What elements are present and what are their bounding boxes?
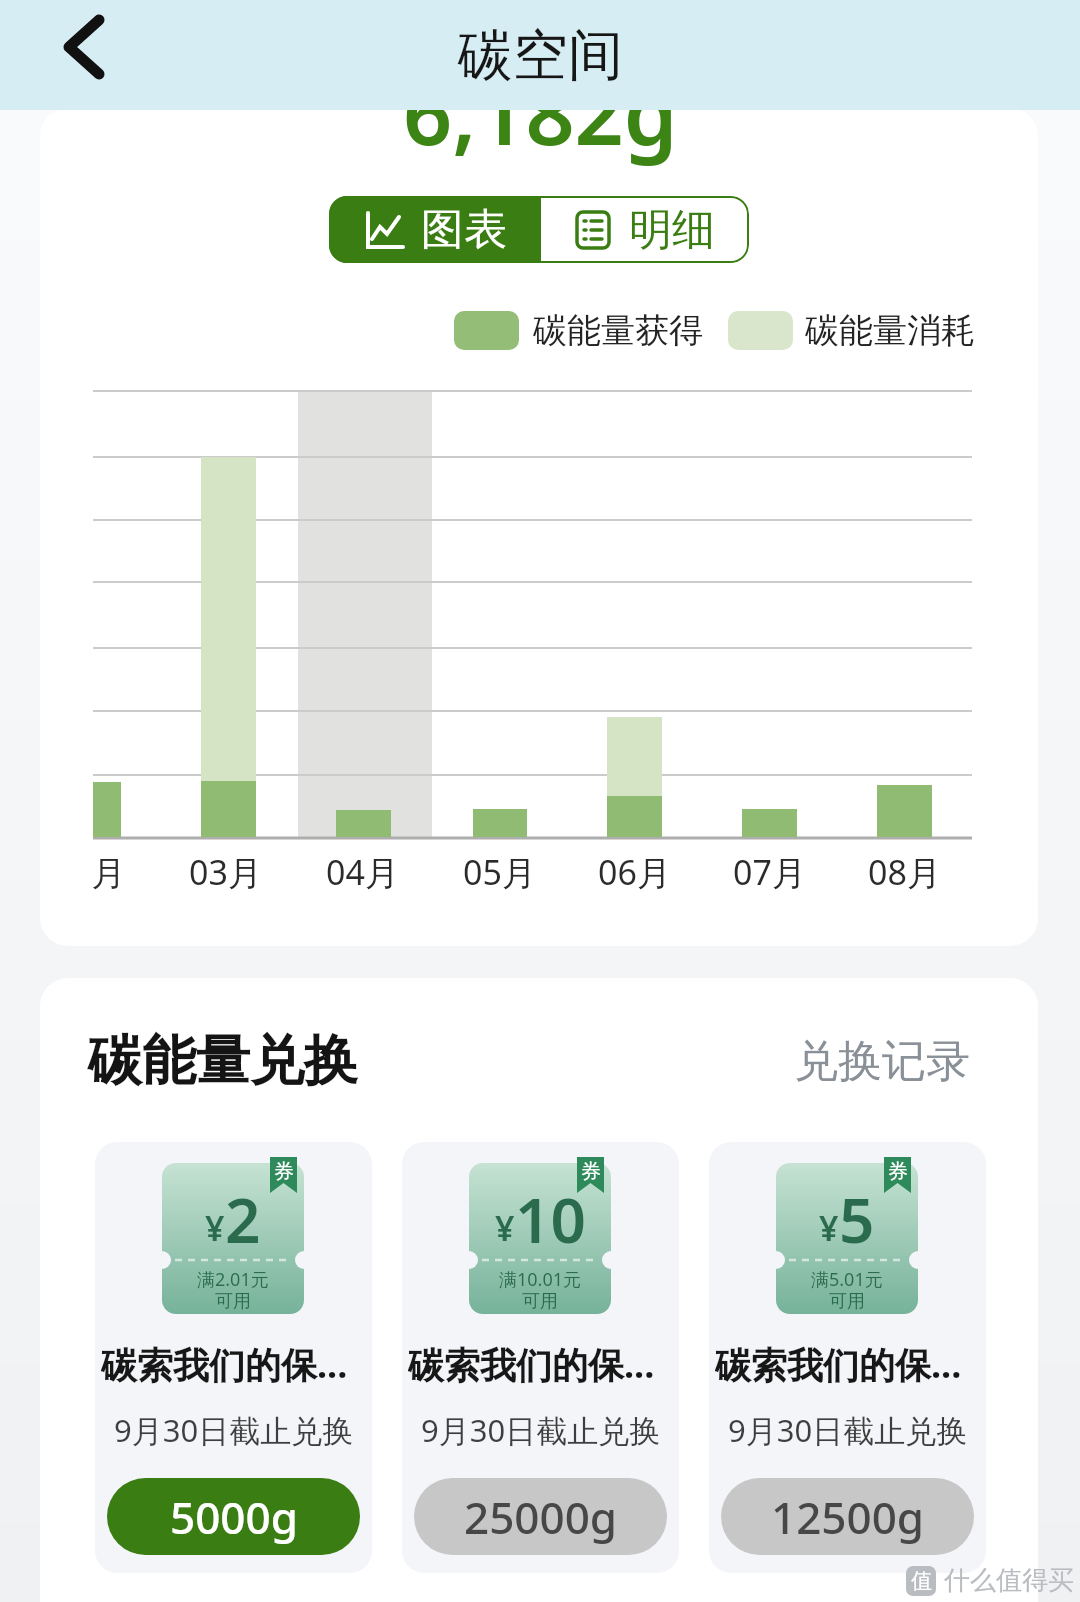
staticText: 碳索我们的保... [715,1340,962,1388]
staticText: 12500g [771,1487,925,1547]
staticText: 券 [274,1159,294,1184]
staticText: 9月30日截止兑换 [421,1409,661,1451]
button[interactable]: ¥ [402,1142,679,1573]
staticText: 可用 [215,1290,251,1313]
staticText: 满10.01元 [499,1267,582,1292]
staticText: 可用 [829,1290,865,1313]
staticText: 图表 [421,203,507,257]
staticText: 券 [888,1159,908,1184]
button[interactable]: 25000g [414,1478,667,1555]
staticText: 9月30日截止兑换 [728,1409,968,1451]
staticText: 04月 [326,849,399,895]
staticText: 满5.01元 [811,1267,883,1292]
staticText: 碳能量消耗 [805,309,975,352]
staticText: 2 [225,1177,261,1261]
staticText: 什么值得买 [944,1564,1074,1597]
button[interactable]: ¥ [709,1142,986,1573]
staticText: 券 [581,1159,601,1184]
button[interactable]: 图表 [329,196,541,263]
staticText: 值 [911,1568,932,1594]
button[interactable]: 兑换记录 [780,1026,970,1096]
staticText: 5 [839,1177,875,1261]
staticText: 6,182g [403,53,678,170]
staticText: 碳索我们的保... [408,1340,655,1388]
staticText: 5000g [170,1487,298,1547]
staticText: 06月 [598,849,671,895]
staticText: 碳能量兑换 [88,1027,358,1095]
staticText: 2月 [93,849,126,895]
button[interactable] [42,8,126,86]
button[interactable]: ¥ [95,1142,372,1573]
staticText: 08月 [868,849,941,895]
staticText: 碳能量获得 [533,309,703,352]
staticText: 可用 [522,1290,558,1313]
staticText: ¥ [819,1205,839,1251]
staticText: 03月 [189,849,262,895]
staticText: 9月30日截止兑换 [114,1409,354,1451]
staticText: ¥ [205,1205,225,1251]
staticText: 05月 [463,849,536,895]
staticText: 碳空间 [458,21,623,90]
button[interactable]: 12500g [721,1478,974,1555]
button[interactable]: 5000g [107,1478,360,1555]
staticText: 满2.01元 [197,1267,269,1292]
staticText: 25000g [464,1487,618,1547]
staticText: 兑换记录 [794,1034,970,1089]
staticText: 07月 [733,849,806,895]
staticText: ¥ [495,1205,515,1251]
staticText: 碳索我们的保... [101,1340,348,1388]
staticText: 10 [515,1177,586,1261]
staticText: 明细 [629,203,715,257]
button[interactable]: 明细 [541,196,747,263]
